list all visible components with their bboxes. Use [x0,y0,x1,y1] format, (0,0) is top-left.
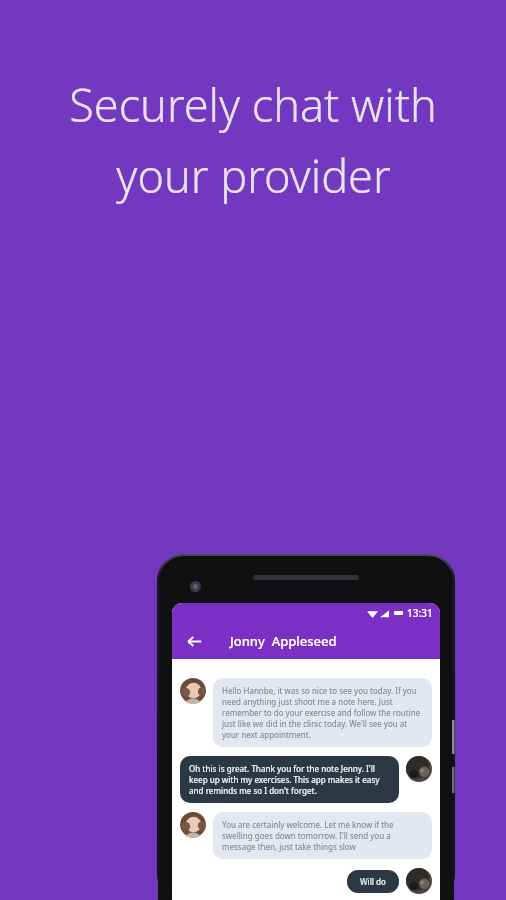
button[interactable]: Hello Hannbe, it was so nice to see you … [213,678,432,747]
button[interactable]: Back [180,627,208,655]
button[interactable]: You are certainly welcome. Let me know i… [213,812,432,859]
button[interactable]: Hannah avatar [406,756,432,782]
staticText: Oh this is great. Thank you for the note… [189,763,390,796]
staticText: 13:31 [407,606,433,620]
staticText: Will do [360,876,386,887]
staticText: You are certainly welcome. Let me know i… [222,819,423,852]
button[interactable]: Oh this is great. Thank you for the note… [180,756,399,803]
staticText: Securely chat with [69,74,437,135]
button[interactable]: Jonny Appleseed avatar [180,812,206,838]
button[interactable]: Will do [347,870,399,893]
staticText: Hello Hannbe, it was so nice to see you … [222,685,423,740]
button[interactable]: Jonny Appleseed avatar [180,678,206,704]
staticText: Jonny Appleseed [230,632,337,650]
button[interactable]: Hannah avatar [406,868,432,894]
staticText: your provider [116,145,391,206]
